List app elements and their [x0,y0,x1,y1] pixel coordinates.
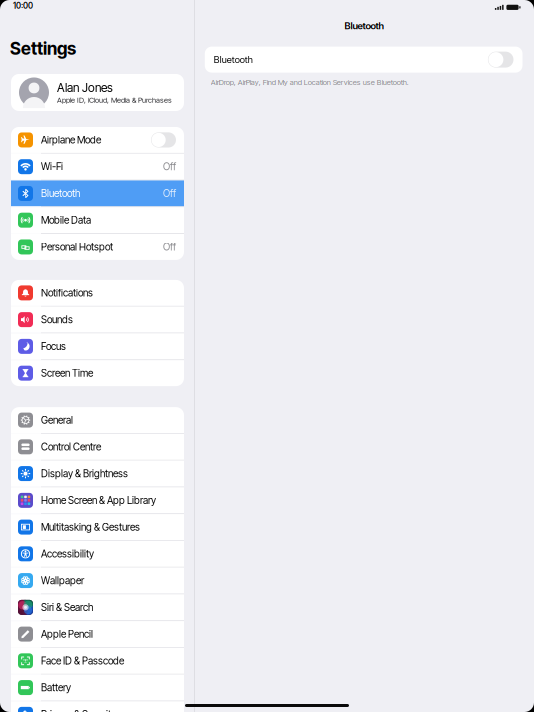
button[interactable]: Alan Jones [11,74,184,111]
button[interactable]: Multitasking & Gestures [11,514,184,540]
staticText: Settings [10,38,76,59]
button[interactable]: Mobile Data [11,207,184,233]
staticText: Sounds [41,314,73,326]
staticText: Control Centre [41,441,101,453]
staticText: Home Screen & App Library [41,494,156,506]
staticText: Apple Pencil [41,628,93,640]
staticText: Airplane Mode [41,134,101,146]
staticText: Wi-Fi [41,161,63,173]
button[interactable]: Control Centre [11,434,184,460]
button[interactable]: Focus [11,333,184,359]
button[interactable]: Privacy & Security [11,701,184,712]
staticText: Off [163,161,176,173]
staticText: Screen Time [41,367,93,379]
staticText: General [41,414,73,426]
button[interactable]: Siri & Search [11,594,184,620]
staticText: Personal Hotspot [41,241,113,253]
button[interactable]: Notifications [11,280,184,306]
staticText: Privacy & Security [41,708,116,712]
button[interactable]: Bluetooth [11,180,184,206]
staticText: Off [163,241,176,253]
button[interactable]: Wallpaper [11,568,184,593]
staticText: Multitasking & Gestures [41,521,140,533]
button[interactable]: Face ID & Passcode [11,648,184,674]
staticText: Mobile Data [41,214,91,226]
staticText: Accessibility [41,548,94,560]
button[interactable]: Apple Pencil [11,621,184,647]
staticText: Notifications [41,287,93,299]
staticText: Display & Brightness [41,467,128,480]
button[interactable]: Battery [11,675,184,700]
staticText: Siri & Search [41,601,93,613]
staticText: Alan Jones [57,80,113,95]
button[interactable]: General [11,407,184,433]
button[interactable]: Display & Brightness [11,461,184,486]
button[interactable]: Wi-Fi [11,154,184,180]
staticText: 10:00 [13,1,33,11]
staticText: Face ID & Passcode [41,655,124,667]
button[interactable]: Home Screen & App Library [11,487,184,513]
staticText: Focus [41,340,66,352]
button[interactable]: Sounds [11,307,184,333]
staticText: Bluetooth [344,20,384,32]
staticText: AirDrop, AirPlay, Find My and Location S… [211,78,409,87]
button[interactable]: Personal Hotspot [11,234,184,260]
staticText: Apple ID, iCloud, Media & Purchases [57,95,172,104]
staticText: Bluetooth [214,54,253,65]
staticText: Bluetooth [41,187,80,199]
staticText: Battery [41,681,71,694]
button[interactable]: Accessibility [11,541,184,567]
button[interactable]: Screen Time [11,360,184,386]
staticText: Wallpaper [41,574,84,587]
button[interactable]: Airplane Mode [11,127,184,153]
staticText: Off [163,187,176,199]
